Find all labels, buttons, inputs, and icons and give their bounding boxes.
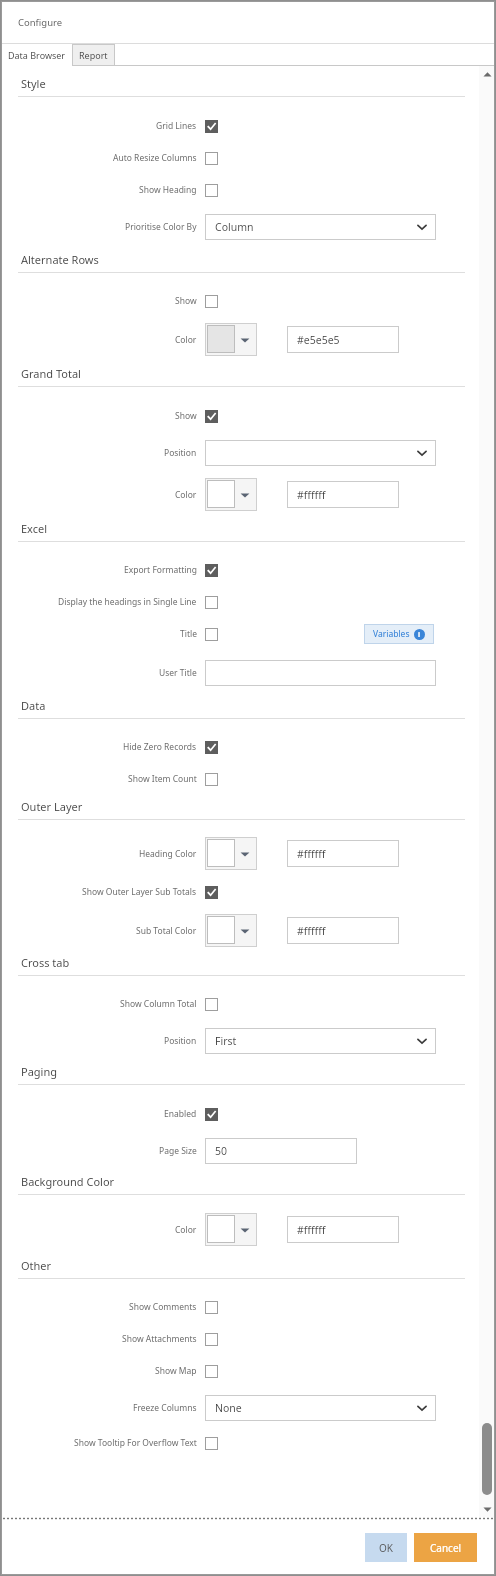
- staticText: Show Attachments: [122, 1333, 197, 1345]
- staticText: Freeze Columns: [133, 1402, 197, 1414]
- button[interactable]: Show Outer Layer Sub Totals: [1, 876, 495, 908]
- staticText: Style: [21, 76, 46, 91]
- staticText: #ffffff: [297, 488, 326, 502]
- button[interactable]: Auto Resize Columns: [1, 142, 495, 174]
- staticText: OK: [379, 1541, 393, 1555]
- button[interactable]: [205, 660, 436, 686]
- staticText: Show Outer Layer Sub Totals: [82, 886, 197, 898]
- staticText: Outer Layer: [21, 799, 83, 814]
- staticText: Alternate Rows: [21, 252, 99, 267]
- staticText: Cross tab: [21, 955, 70, 970]
- button[interactable]: Choose Color: [205, 478, 257, 511]
- staticText: #e5e5e5: [297, 333, 340, 347]
- button[interactable]: Cancel: [414, 1533, 477, 1562]
- staticText: 50: [215, 1144, 228, 1158]
- button[interactable]: 50: [205, 1138, 357, 1164]
- staticText: Color: [175, 1224, 197, 1236]
- button[interactable]: [205, 623, 227, 645]
- button[interactable]: First: [205, 1028, 436, 1054]
- button[interactable]: Display the headings in Single Line: [1, 586, 495, 618]
- button[interactable]: OK: [365, 1533, 407, 1562]
- button[interactable]: Column: [205, 214, 436, 240]
- staticText: Enabled: [164, 1108, 197, 1120]
- staticText: Position: [164, 1035, 197, 1047]
- staticText: i: [418, 630, 421, 640]
- staticText: Other: [21, 1258, 52, 1273]
- staticText: Show Heading: [139, 184, 197, 196]
- staticText: Excel: [21, 521, 48, 536]
- button[interactable]: Show: [1, 285, 495, 317]
- button[interactable]: Scroll up: [479, 66, 495, 82]
- button[interactable]: Enabled: [1, 1098, 495, 1130]
- button[interactable]: Show Heading: [1, 174, 495, 206]
- button[interactable]: Show Attachments: [1, 1323, 495, 1355]
- button[interactable]: Variables: [364, 624, 434, 644]
- staticText: Show Map: [155, 1365, 197, 1377]
- staticText: Position: [164, 447, 197, 459]
- button[interactable]: Hide Zero Records: [1, 731, 495, 763]
- button[interactable]: Data Browser: [1, 44, 72, 66]
- staticText: Cancel: [430, 1541, 462, 1555]
- staticText: User Title: [159, 667, 197, 679]
- staticText: Hide Zero Records: [123, 741, 197, 753]
- staticText: #ffffff: [297, 924, 326, 938]
- staticText: None: [215, 1401, 416, 1415]
- staticText: Auto Resize Columns: [113, 152, 197, 164]
- button[interactable]: Scroll down: [479, 1501, 495, 1517]
- button[interactable]: Show: [1, 400, 495, 432]
- staticText: Heading Color: [139, 848, 197, 860]
- staticText: Report: [79, 49, 108, 61]
- staticText: Variables: [373, 628, 410, 640]
- button[interactable]: None: [205, 1395, 436, 1421]
- staticText: Display the headings in Single Line: [58, 596, 197, 608]
- staticText: Show Item Count: [128, 773, 197, 785]
- staticText: Data: [21, 698, 46, 713]
- staticText: Data Browser: [8, 49, 66, 61]
- button[interactable]: #ffffff: [287, 917, 399, 944]
- staticText: Show: [175, 295, 197, 307]
- button[interactable]: #ffffff: [287, 481, 399, 508]
- staticText: Column: [215, 220, 416, 234]
- button[interactable]: Show Item Count: [1, 763, 495, 795]
- button[interactable]: Choose Color: [205, 323, 257, 356]
- button[interactable]: Show Map: [1, 1355, 495, 1387]
- button[interactable]: Scroll thumb: [482, 1423, 492, 1495]
- button[interactable]: Choose Heading Color: [205, 837, 257, 870]
- staticText: Color: [175, 334, 197, 346]
- button[interactable]: Choose Color: [205, 1213, 257, 1246]
- staticText: Page Size: [159, 1145, 197, 1157]
- button[interactable]: Choose Sub Total Color: [205, 914, 257, 947]
- staticText: Grand Total: [21, 366, 81, 381]
- button[interactable]: #e5e5e5: [287, 326, 399, 353]
- button[interactable]: Show Tooltip For Overflow Text: [1, 1427, 495, 1459]
- staticText: Title: [180, 628, 197, 640]
- button[interactable]: Show Column Total: [1, 988, 495, 1020]
- staticText: Sub Total Color: [136, 925, 197, 937]
- staticText: Background Color: [21, 1174, 115, 1189]
- button[interactable]: Grid Lines: [1, 110, 495, 142]
- button[interactable]: #ffffff: [287, 1216, 399, 1243]
- button[interactable]: #ffffff: [287, 840, 399, 867]
- staticText: Paging: [21, 1064, 57, 1079]
- button[interactable]: [205, 440, 436, 466]
- staticText: Show Comments: [129, 1301, 197, 1313]
- staticText: Grid Lines: [156, 120, 197, 132]
- staticText: Color: [175, 489, 197, 501]
- staticText: Export Formatting: [124, 564, 197, 576]
- staticText: #ffffff: [297, 847, 326, 861]
- staticText: #ffffff: [297, 1223, 326, 1237]
- staticText: Show Column Total: [120, 998, 197, 1010]
- button[interactable]: Export Formatting: [1, 554, 495, 586]
- staticText: Show Tooltip For Overflow Text: [74, 1437, 197, 1449]
- staticText: Prioritise Color By: [125, 221, 197, 233]
- button[interactable]: Show Comments: [1, 1291, 495, 1323]
- staticText: Configure: [18, 16, 63, 29]
- button[interactable]: Report: [72, 44, 115, 66]
- staticText: Show: [175, 410, 197, 422]
- staticText: First: [215, 1034, 416, 1048]
